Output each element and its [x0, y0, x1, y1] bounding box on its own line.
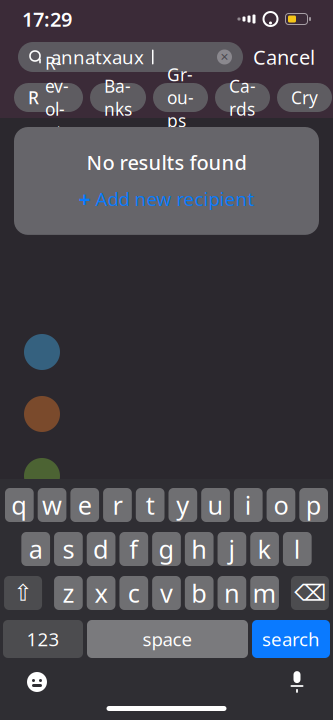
staticText: k — [258, 532, 272, 566]
button[interactable]: 123 — [3, 620, 83, 658]
button[interactable]: Delete — [291, 576, 329, 610]
button[interactable]: j — [218, 532, 246, 566]
button[interactable]: s — [54, 532, 83, 566]
staticText: ⌫ — [294, 580, 326, 606]
staticText: r — [112, 488, 122, 522]
button[interactable]: o — [267, 488, 295, 522]
button[interactable]: u — [201, 488, 230, 522]
staticText: Revolut — [45, 51, 69, 144]
button[interactable]: Shift — [4, 576, 42, 610]
staticText: Groups — [167, 63, 194, 132]
staticText: s — [62, 532, 74, 566]
button[interactable]: Cards — [215, 83, 270, 112]
button[interactable]: y — [168, 488, 197, 522]
staticText: 123 — [26, 627, 59, 651]
staticText: annatxaux — [51, 45, 144, 69]
staticText: b — [191, 576, 207, 610]
button[interactable]: x — [87, 576, 115, 610]
staticText: 17:29 — [22, 6, 72, 32]
button[interactable]: b — [185, 576, 214, 610]
button[interactable]: v — [152, 576, 181, 610]
staticText: w — [42, 488, 62, 522]
staticText: a — [29, 532, 43, 566]
staticText: x — [95, 576, 108, 610]
staticText: v — [160, 576, 173, 610]
staticText: n — [224, 576, 240, 610]
staticText: z — [62, 576, 74, 610]
button[interactable]: w — [38, 488, 66, 522]
button[interactable]: Emoji keyboard — [26, 671, 48, 693]
staticText: p — [306, 488, 322, 522]
staticText: ⇧ — [14, 580, 33, 606]
button[interactable]: z — [54, 576, 83, 610]
button[interactable]: Dictation — [287, 670, 307, 694]
button[interactable]: f — [119, 532, 148, 566]
staticText: u — [208, 488, 224, 522]
button[interactable]: + — [78, 185, 254, 213]
staticText: h — [191, 532, 207, 566]
button[interactable]: Banks — [90, 83, 146, 112]
button[interactable]: p — [299, 488, 328, 522]
button[interactable]: t — [136, 488, 164, 522]
staticText: c — [128, 576, 140, 610]
button[interactable]: d — [87, 532, 115, 566]
staticText: y — [176, 488, 189, 522]
staticText: t — [146, 488, 155, 522]
button[interactable]: h — [185, 532, 214, 566]
staticText: i — [245, 488, 252, 522]
staticText: j — [228, 532, 235, 566]
staticText: o — [273, 488, 288, 522]
staticText: d — [93, 532, 109, 566]
button[interactable]: l — [283, 532, 312, 566]
staticText: Banks — [104, 74, 132, 120]
button[interactable]: e — [70, 488, 99, 522]
staticText: No results found — [86, 149, 246, 176]
button[interactable]: g — [152, 532, 181, 566]
button[interactable]: i — [234, 488, 263, 522]
staticText: f — [129, 532, 138, 566]
staticText: Add new recipient — [95, 186, 254, 211]
button[interactable]: Cry — [277, 83, 332, 112]
staticText: ✕ — [220, 51, 229, 63]
staticText: search — [262, 627, 320, 651]
staticText: q — [11, 488, 27, 522]
button[interactable]: q — [5, 488, 34, 522]
button[interactable]: Cancel — [253, 44, 315, 70]
button[interactable]: n — [218, 576, 246, 610]
staticText: + — [78, 185, 90, 213]
staticText: Cards — [229, 74, 256, 120]
staticText: Cry — [291, 86, 318, 109]
button[interactable]: c — [119, 576, 148, 610]
button[interactable]: k — [250, 532, 279, 566]
staticText: e — [78, 488, 92, 522]
button[interactable]: R — [14, 83, 83, 112]
staticText: Cancel — [253, 44, 315, 70]
button[interactable]: a — [21, 532, 50, 566]
button[interactable]: space — [87, 620, 248, 658]
staticText: l — [294, 532, 301, 566]
button[interactable]: Groups — [153, 83, 208, 112]
staticText: space — [142, 627, 192, 651]
button[interactable]: search — [252, 620, 330, 658]
button[interactable]: r — [103, 488, 132, 522]
button[interactable]: m — [250, 576, 279, 610]
staticText: g — [158, 532, 174, 566]
staticText: m — [253, 576, 277, 610]
staticText: R — [28, 86, 39, 109]
button[interactable]: annatxaux — [18, 42, 243, 72]
